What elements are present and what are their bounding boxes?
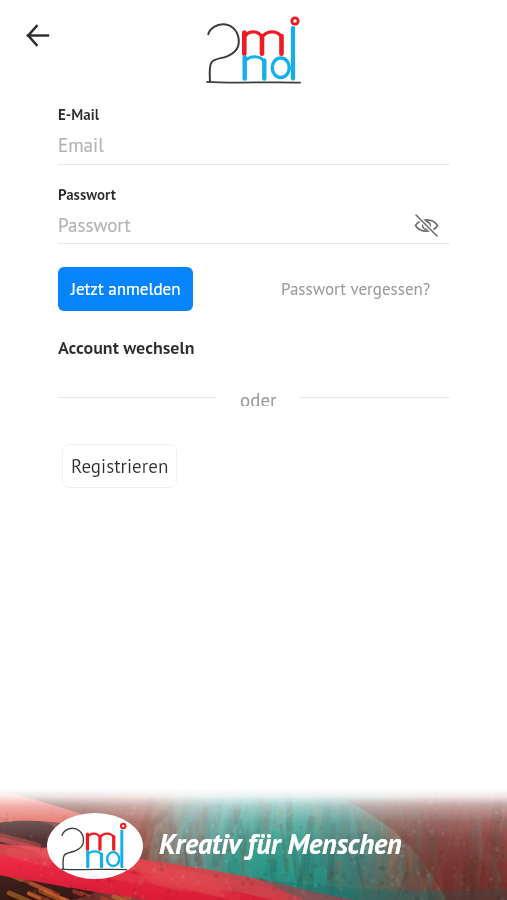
staticText: E-Mail <box>58 105 100 124</box>
button[interactable]: Passwort vergessen? <box>281 278 431 300</box>
staticText: oder <box>240 388 277 406</box>
staticText: Passwort vergessen? <box>281 278 431 300</box>
staticText: Passwort <box>58 185 116 204</box>
button[interactable]: Werbung 2mind <box>0 788 507 900</box>
staticText: Jetzt anmelden <box>71 278 181 300</box>
button[interactable]: Back <box>16 14 59 57</box>
staticText: Account wechseln <box>58 336 195 359</box>
staticText: Registrieren <box>71 454 169 479</box>
staticText: Email <box>58 133 104 158</box>
button[interactable]: Registrieren <box>62 444 177 488</box>
staticText: Passwort <box>58 213 131 238</box>
button[interactable]: Passwort anzeigen <box>411 212 441 238</box>
staticText: Kreativ für Menschen <box>159 825 402 861</box>
button[interactable]: Jetzt anmelden <box>58 267 193 311</box>
button[interactable]: Account wechseln <box>58 336 195 359</box>
